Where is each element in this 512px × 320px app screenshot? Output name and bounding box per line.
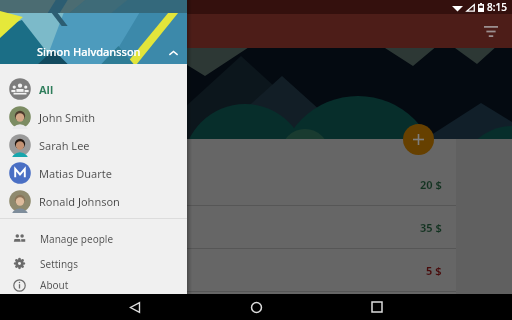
- button[interactable]: Back: [118, 294, 152, 320]
- staticText: Bus fare: [14, 256, 57, 271]
- button[interactable]: Movie tickets: [0, 206, 456, 249]
- button[interactable]: All: [0, 75, 187, 103]
- staticText: 48 mins ago: [14, 273, 66, 285]
- staticText: John Smith: [39, 110, 96, 125]
- staticText: 35 $: [420, 220, 442, 235]
- staticText: Movie tickets: [14, 213, 82, 228]
- button[interactable]: Recents: [360, 294, 394, 320]
- staticText: 20 $: [420, 177, 442, 192]
- button[interactable]: Manage people: [0, 226, 187, 251]
- button[interactable]: Dinner at Luigi's: [0, 163, 456, 206]
- staticText: Sarah Lee: [39, 138, 90, 153]
- button[interactable]: Sort: [478, 18, 504, 44]
- button[interactable]: Matias Duarte: [0, 159, 187, 187]
- staticText: Settings: [40, 257, 79, 271]
- button[interactable]: Bus fare: [0, 249, 456, 292]
- button[interactable]: Ronald Johnson: [0, 187, 187, 215]
- staticText: Matias Duarte: [39, 166, 112, 181]
- staticText: 5 $: [426, 263, 442, 278]
- staticText: Manage people: [40, 232, 114, 246]
- staticText: 8:15: [487, 0, 507, 14]
- button[interactable]: Add: [403, 124, 434, 155]
- staticText: Dinner at Luigi's: [14, 170, 98, 185]
- staticText: 23 mins ago: [14, 230, 66, 242]
- staticText: Ronald Johnson: [39, 194, 120, 209]
- button[interactable]: Settings: [0, 251, 187, 276]
- button[interactable]: Collapse accounts: [163, 43, 183, 63]
- staticText: 2 hours ago: [14, 187, 65, 199]
- staticText: About: [40, 278, 69, 292]
- staticText: Simon Halvdansson: [37, 44, 141, 59]
- staticText: All: [39, 82, 54, 97]
- button[interactable]: John Smith: [0, 103, 187, 131]
- button[interactable]: Sarah Lee: [0, 131, 187, 159]
- button[interactable]: Home: [239, 294, 273, 320]
- button[interactable]: About: [0, 276, 187, 294]
